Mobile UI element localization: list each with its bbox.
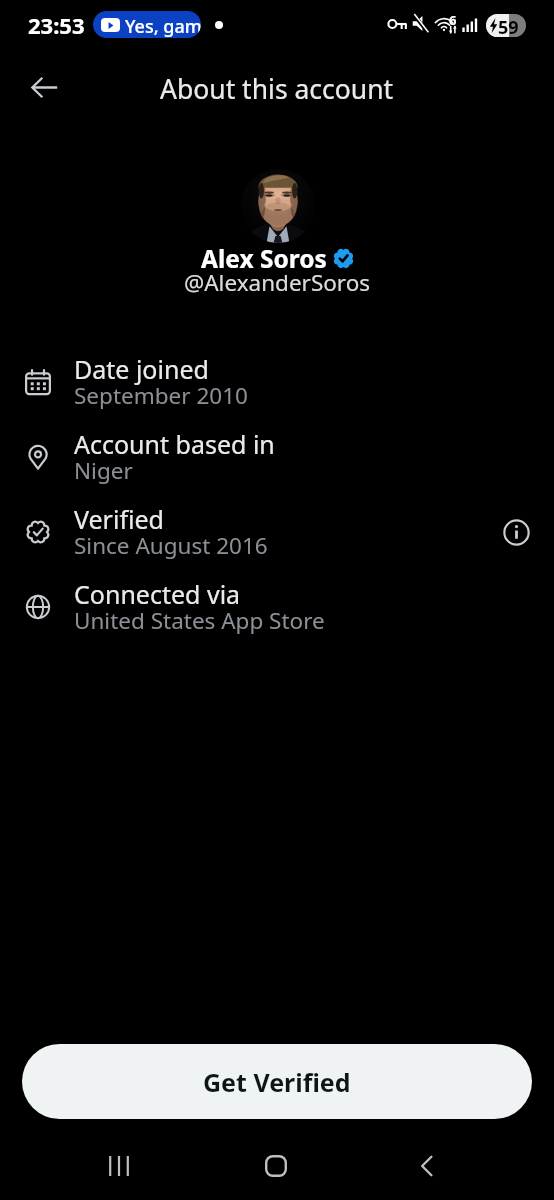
button[interactable]: Recents xyxy=(91,1138,147,1194)
button[interactable]: Verified xyxy=(0,495,554,570)
button[interactable]: Get Verified xyxy=(22,1044,532,1119)
staticText: Get Verified xyxy=(203,1065,351,1099)
staticText: Connected via xyxy=(74,577,241,611)
staticText: 6 xyxy=(449,11,457,29)
button[interactable]: Date joined xyxy=(0,345,554,420)
button[interactable]: Account based in xyxy=(0,420,554,495)
button[interactable]: More info xyxy=(492,508,540,556)
staticText: Yes, game xyxy=(125,14,201,38)
staticText: @AlexanderSoros xyxy=(184,267,371,298)
staticText: September 2010 xyxy=(74,380,248,411)
button[interactable]: Home xyxy=(248,1138,304,1194)
staticText: Alex Soros xyxy=(201,242,327,275)
button[interactable]: Connected via xyxy=(0,570,554,645)
staticText: United States App Store xyxy=(74,605,325,636)
staticText: Since August 2016 xyxy=(74,530,268,561)
staticText: Account based in xyxy=(74,427,275,461)
staticText: Date joined xyxy=(74,352,209,386)
staticText: Verified xyxy=(74,502,164,536)
staticText: About this account xyxy=(160,71,394,107)
button[interactable]: Back xyxy=(20,63,68,111)
staticText: 23:53 xyxy=(28,10,85,40)
staticText: 59 xyxy=(498,15,519,37)
button[interactable]: Back xyxy=(399,1138,455,1194)
button[interactable]: Yes, game xyxy=(93,11,201,38)
staticText: Niger xyxy=(74,455,133,486)
